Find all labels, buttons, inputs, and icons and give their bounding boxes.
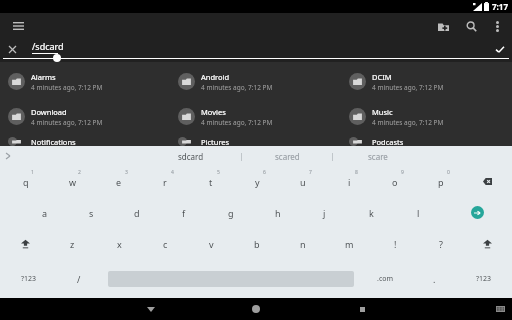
staticText: /: [77, 273, 81, 285]
button[interactable]: ?: [418, 228, 464, 259]
button[interactable]: More options: [486, 15, 508, 37]
button[interactable]: i: [326, 166, 372, 197]
button[interactable]: Pictures: [178, 137, 339, 146]
button[interactable]: y: [234, 166, 280, 197]
button[interactable]: Shift: [464, 228, 510, 259]
staticText: Movies: [201, 107, 226, 117]
staticText: a: [42, 207, 48, 219]
button[interactable]: .com: [359, 259, 411, 298]
button[interactable]: w: [49, 166, 96, 197]
button[interactable]: !: [372, 228, 418, 259]
staticText: scared: [275, 151, 300, 162]
button[interactable]: z: [49, 228, 96, 259]
button[interactable]: q: [2, 166, 49, 197]
button[interactable]: Confirm: [492, 41, 508, 57]
button[interactable]: Alarms: [8, 67, 168, 96]
button[interactable]: a: [22, 197, 68, 228]
staticText: .com: [377, 274, 394, 284]
button[interactable]: Expand suggestions: [2, 150, 14, 162]
button[interactable]: sdcard: [141, 151, 241, 162]
staticText: ?123: [476, 274, 492, 284]
staticText: d: [134, 207, 140, 219]
button[interactable]: Home: [203, 298, 309, 320]
staticText: e: [116, 176, 122, 188]
button[interactable]: l: [395, 197, 442, 228]
button[interactable]: c: [142, 228, 188, 259]
staticText: o: [392, 176, 398, 188]
button[interactable]: j: [301, 197, 348, 228]
button[interactable]: Open navigation drawer: [6, 14, 30, 38]
button[interactable]: d: [114, 197, 160, 228]
button[interactable]: h: [254, 197, 301, 228]
button[interactable]: u: [280, 166, 326, 197]
button[interactable]: Android: [178, 67, 339, 96]
button[interactable]: b: [234, 228, 280, 259]
button[interactable]: ?123: [458, 259, 510, 298]
button[interactable]: Enter: [442, 197, 512, 228]
staticText: c: [163, 238, 168, 250]
staticText: b: [254, 238, 260, 250]
staticText: q: [23, 176, 29, 188]
staticText: r: [163, 176, 167, 188]
button[interactable]: Music: [349, 102, 510, 131]
staticText: n: [300, 238, 306, 250]
staticText: Pictures: [201, 137, 230, 146]
staticText: v: [209, 238, 214, 250]
button[interactable]: x: [96, 228, 142, 259]
button[interactable]: Back: [98, 298, 203, 320]
button[interactable]: Shift: [2, 228, 49, 259]
staticText: 4 minutes ago, 7:12 PM: [372, 118, 444, 127]
button[interactable]: Search: [460, 15, 482, 37]
staticText: 4 minutes ago, 7:12 PM: [372, 83, 444, 92]
staticText: t: [209, 176, 213, 188]
staticText: y: [255, 176, 260, 188]
staticText: Alarms: [31, 72, 56, 82]
staticText: 4: [171, 169, 174, 176]
staticText: i: [348, 176, 351, 188]
staticText: 4 minutes ago, 7:12 PM: [201, 118, 273, 127]
button[interactable]: scare: [333, 151, 423, 162]
button[interactable]: n: [280, 228, 326, 259]
staticText: m: [345, 238, 354, 250]
staticText: 3: [125, 169, 128, 176]
button[interactable]: p: [418, 166, 464, 197]
staticText: sdcard: [178, 151, 204, 162]
staticText: x: [117, 238, 122, 250]
button[interactable]: m: [326, 228, 372, 259]
button[interactable]: Movies: [178, 102, 339, 131]
button[interactable]: DCIM: [349, 67, 510, 96]
button[interactable]: v: [188, 228, 234, 259]
button[interactable]: r: [142, 166, 188, 197]
staticText: 6: [263, 169, 266, 176]
staticText: k: [369, 207, 374, 219]
button[interactable]: Download: [8, 102, 168, 131]
button[interactable]: s: [68, 197, 114, 228]
button[interactable]: ?123: [2, 259, 55, 298]
button[interactable]: scared: [242, 151, 332, 162]
button[interactable]: e: [96, 166, 142, 197]
button[interactable]: Recent apps: [309, 298, 415, 320]
staticText: ?123: [21, 274, 37, 284]
button[interactable]: f: [160, 197, 207, 228]
button[interactable]: g: [207, 197, 254, 228]
staticText: Download: [31, 107, 67, 117]
staticText: g: [228, 207, 234, 219]
button[interactable]: t: [188, 166, 234, 197]
button[interactable]: New folder: [432, 15, 454, 37]
button[interactable]: Space: [103, 259, 359, 298]
button[interactable]: /: [55, 259, 103, 298]
staticText: 4 minutes ago, 7:12 PM: [31, 118, 103, 127]
button[interactable]: Switch keyboard: [492, 301, 508, 317]
button[interactable]: Notifications: [8, 137, 168, 146]
button[interactable]: k: [348, 197, 395, 228]
button[interactable]: o: [372, 166, 418, 197]
staticText: !: [394, 238, 397, 250]
button[interactable]: Podcasts: [349, 137, 510, 146]
staticText: h: [275, 207, 281, 219]
button[interactable]: Cancel: [4, 41, 20, 57]
staticText: 4 minutes ago, 7:12 PM: [31, 83, 103, 92]
staticText: scare: [368, 151, 388, 162]
staticText: 4 minutes ago, 7:12 PM: [201, 83, 273, 92]
button[interactable]: Backspace: [464, 166, 510, 197]
